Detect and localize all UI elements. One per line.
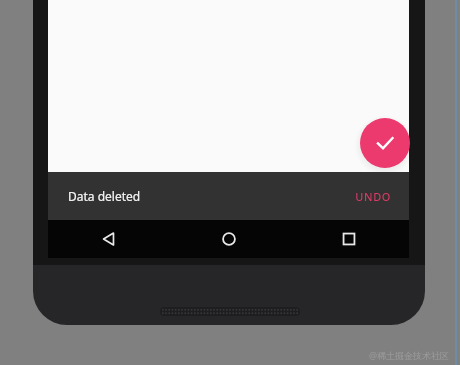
- staticText: Data deleted: [68, 188, 141, 204]
- staticText: @稀土掘金技术社区: [369, 349, 450, 361]
- button[interactable]: UNDO: [353, 183, 393, 210]
- staticText: UNDO: [355, 189, 391, 204]
- button[interactable]: Home: [169, 220, 289, 258]
- button[interactable]: Back: [48, 220, 169, 258]
- button[interactable]: Recent apps: [289, 220, 409, 258]
- button[interactable]: Confirm: [360, 118, 410, 168]
- button[interactable]: Data deleted: [48, 172, 409, 220]
